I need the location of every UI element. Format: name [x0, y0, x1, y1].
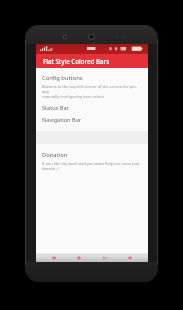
staticText: Buttons in the top-left corner of the sc… [42, 84, 143, 99]
button[interactable]: Config buttons [36, 72, 148, 83]
staticText: Navigation Bar [42, 116, 82, 124]
button[interactable]: Menu [123, 253, 137, 262]
button[interactable]: Back [98, 253, 112, 262]
button[interactable]: Recents [47, 253, 61, 262]
staticText: Status Bar [42, 104, 69, 112]
button[interactable]: Navigation Bar [36, 114, 148, 126]
button[interactable]: Donation [36, 149, 148, 160]
button[interactable]: Status Bar [36, 102, 148, 114]
staticText: Flat Style Colored Bars [43, 57, 110, 65]
staticText: If you like my work and you want help me… [42, 161, 143, 171]
staticText: Donation [42, 151, 68, 159]
button[interactable]: Home [72, 253, 86, 262]
staticText: Config buttons [42, 74, 83, 82]
